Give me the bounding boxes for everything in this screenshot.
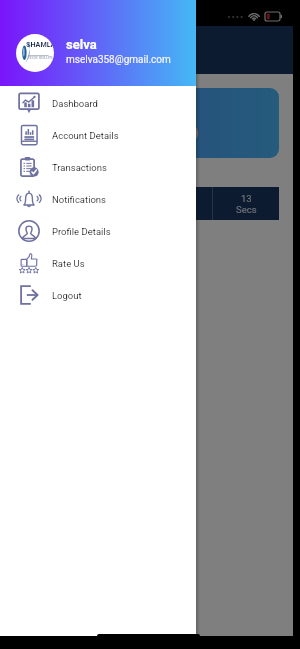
staticText: 02 bbox=[41, 193, 52, 204]
button[interactable]: Logout bbox=[0, 279, 196, 311]
button[interactable]: Transactions bbox=[0, 151, 196, 183]
staticText: Logout bbox=[52, 290, 82, 301]
button[interactable]: Rate Us bbox=[0, 247, 196, 279]
button[interactable]: Dashboard bbox=[0, 87, 196, 119]
staticText: SHAMLA bbox=[26, 40, 54, 48]
staticText: Secs bbox=[236, 204, 257, 215]
button[interactable]: SHAMLA bbox=[0, 0, 196, 86]
staticText: 13 bbox=[241, 193, 252, 204]
button[interactable]: Profile Details bbox=[0, 215, 196, 247]
staticText: Dashboard bbox=[52, 98, 98, 109]
staticText: Rate Us bbox=[52, 258, 85, 269]
staticText: Profile Details bbox=[52, 226, 111, 237]
staticText: selva bbox=[66, 37, 97, 52]
button[interactable]: Account Details bbox=[0, 119, 196, 151]
staticText: TECH SOLUTIONS bbox=[27, 55, 54, 60]
staticText: Transactions bbox=[52, 162, 107, 173]
button[interactable]: Notifications bbox=[0, 183, 196, 215]
staticText: Notifications bbox=[52, 194, 107, 205]
button[interactable] bbox=[0, 0, 293, 636]
staticText: Account Details bbox=[52, 130, 119, 141]
staticText: mselva358@gmail.com bbox=[66, 54, 171, 66]
